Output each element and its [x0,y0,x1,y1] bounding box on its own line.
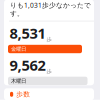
staticText: 歩 [47,68,52,75]
staticText: 歩数 [16,90,30,98]
staticText: 金曜日 [11,46,26,52]
staticText: 9,562 [10,55,46,75]
staticText: りも1,031歩少なかったで す。 [10,1,91,18]
button[interactable]: 歩数 [4,88,94,100]
staticText: 歩 [47,36,52,43]
staticText: 木曜日 [11,78,26,84]
staticText: 8,531 [10,23,46,43]
